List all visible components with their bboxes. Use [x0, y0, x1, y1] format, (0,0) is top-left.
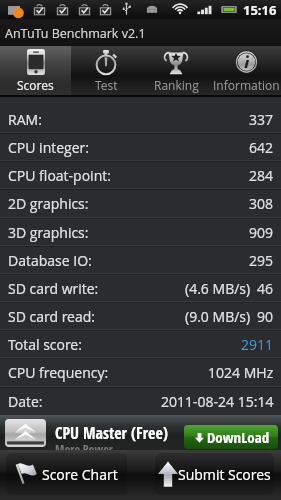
staticText: 2D graphics: — [8, 194, 89, 213]
button[interactable]: Score Chart — [6, 453, 127, 495]
staticText: 642 — [249, 138, 274, 157]
button[interactable]: Ranking — [141, 46, 211, 97]
button[interactable]: CPU float-point: — [0, 161, 281, 189]
button[interactable]: RAM: — [0, 105, 281, 133]
staticText: Information — [213, 77, 280, 93]
staticText: AnTuTu Benchmark v2.1 — [5, 25, 146, 42]
staticText: CPU integer: — [8, 138, 89, 157]
staticText: 15:16 — [243, 1, 277, 19]
staticText: 909 — [249, 223, 274, 242]
staticText: 2911 — [241, 335, 274, 354]
button[interactable]: CPU integer: — [0, 133, 281, 161]
button[interactable]: Total score: — [0, 330, 281, 358]
staticText: CPU frequency: — [8, 363, 109, 382]
staticText: 284 — [249, 166, 274, 185]
staticText: 90 — [257, 307, 274, 326]
staticText: Ranking — [154, 77, 199, 93]
button[interactable]: 2D graphics: — [0, 189, 281, 217]
staticText: Total score: — [8, 335, 82, 354]
button[interactable]: Submit Scores — [155, 453, 274, 495]
button[interactable]: CPU frequency: — [0, 358, 281, 386]
staticText: Test — [95, 77, 118, 93]
button[interactable]: SD card read: — [0, 302, 281, 330]
staticText: 337 — [249, 110, 274, 129]
staticText: Score Chart — [42, 465, 118, 484]
staticText: 2011-08-24 15:14 — [161, 392, 274, 411]
staticText: CPU Master (Free) — [55, 422, 168, 444]
button[interactable]: CPU Master (Free) — [0, 415, 281, 450]
staticText: Scores — [17, 77, 54, 93]
button[interactable]: Date: — [0, 387, 281, 415]
staticText: More Power — [55, 441, 113, 457]
staticText: (4.6 MB/s) — [185, 279, 251, 298]
staticText: DownLoad — [207, 427, 270, 447]
staticText: Date: — [8, 392, 43, 411]
staticText: 308 — [249, 194, 274, 213]
button[interactable]: Test — [71, 46, 141, 97]
button[interactable]: Information — [211, 46, 281, 97]
staticText: 3D graphics: — [8, 223, 89, 242]
staticText: 46 — [257, 279, 274, 298]
button[interactable]: SD card write: — [0, 274, 281, 302]
staticText: 1024 MHz — [208, 363, 274, 382]
button[interactable]: Database IO: — [0, 246, 281, 274]
button[interactable]: Scores — [0, 46, 71, 97]
staticText: (9.0 MB/s) — [185, 307, 251, 326]
staticText: 295 — [249, 251, 274, 270]
staticText: Database IO: — [8, 251, 92, 270]
staticText: RAM: — [8, 110, 42, 129]
staticText: SD card read: — [8, 307, 96, 326]
staticText: SD card write: — [8, 279, 99, 298]
button[interactable]: 3D graphics: — [0, 218, 281, 246]
staticText: Submit Scores — [178, 465, 271, 484]
button[interactable]: DownLoad — [184, 425, 278, 449]
staticText: CPU float-point: — [8, 166, 111, 185]
